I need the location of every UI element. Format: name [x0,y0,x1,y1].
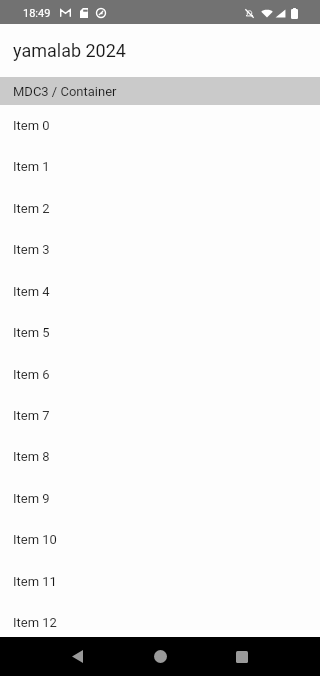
button[interactable]: Item 5 [0,312,320,353]
button[interactable]: Item 7 [0,395,320,436]
button[interactable]: Item 8 [0,436,320,477]
staticText: Item 8 [13,449,50,464]
button[interactable]: Item 3 [0,229,320,270]
staticText: Item 4 [13,284,50,299]
staticText: yamalab 2024 [13,40,126,61]
staticText: Item 9 [13,491,50,506]
button[interactable]: Home [140,637,180,676]
staticText: 18:49 [23,7,51,20]
button[interactable]: Item 2 [0,188,320,229]
staticText: Item 1 [13,159,50,174]
staticText: Item 7 [13,408,50,423]
button[interactable]: Item 12 [0,602,320,637]
staticText: Item 6 [13,367,50,382]
button[interactable]: Item 0 [0,105,320,146]
button[interactable]: Recent apps [222,637,262,676]
staticText: Item 10 [13,532,57,547]
button[interactable]: Item 9 [0,478,320,519]
button[interactable]: Item 6 [0,354,320,395]
staticText: MDC3 / Container [13,84,117,99]
staticText: Item 11 [13,574,57,589]
button[interactable]: MDC3 / Container [0,77,320,105]
staticText: Item 2 [13,201,50,216]
button[interactable]: Item 10 [0,519,320,560]
staticText: Item 12 [13,615,57,630]
staticText: Item 3 [13,242,50,257]
button[interactable]: Item 4 [0,271,320,312]
button[interactable]: Item 1 [0,146,320,187]
staticText: Item 0 [13,118,50,133]
staticText: Item 5 [13,325,50,340]
button[interactable]: Back [57,637,97,676]
button[interactable]: Item 11 [0,561,320,602]
